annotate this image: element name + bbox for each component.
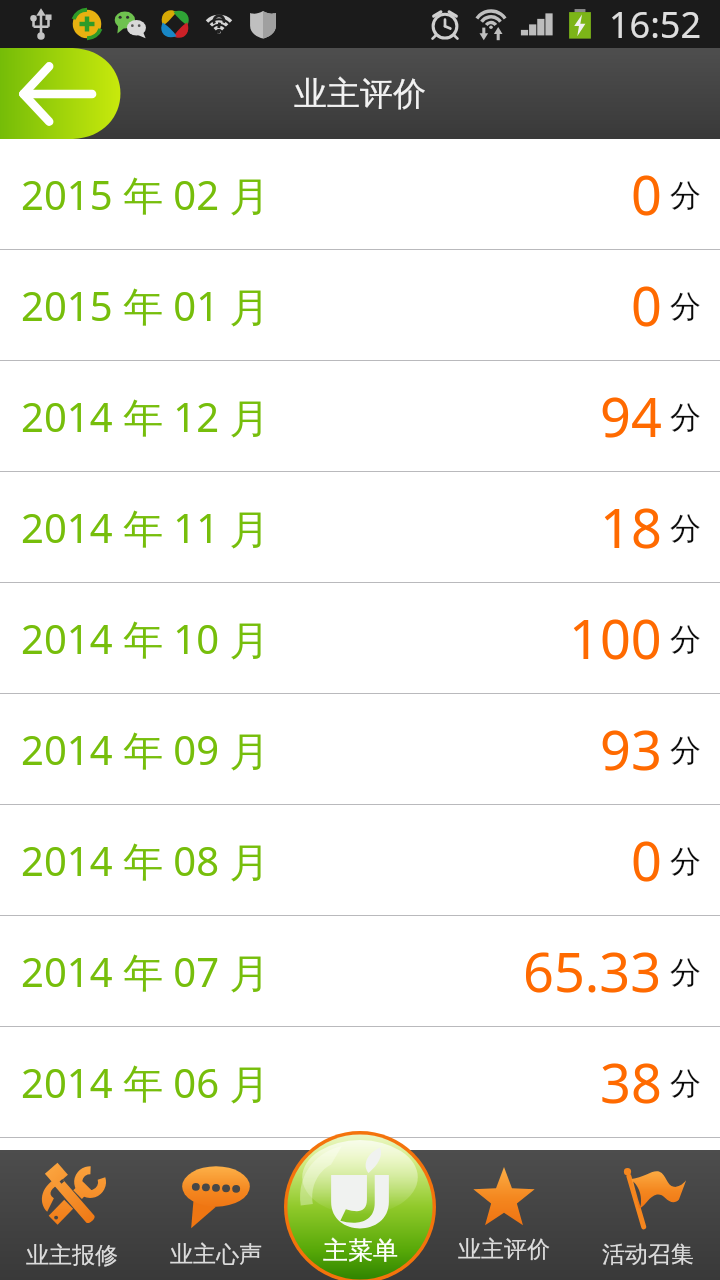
staticText: 65.33	[523, 934, 662, 1008]
staticText: 分	[670, 842, 701, 881]
staticText: 2014 年 12 月	[21, 389, 270, 444]
button[interactable]: 主菜单	[284, 1131, 436, 1280]
staticText: 2014 年 07 月	[21, 944, 270, 999]
button[interactable]: 2014 年 08 月	[0, 805, 720, 915]
button[interactable]: 2014 年 10 月	[0, 583, 720, 693]
button[interactable]: 2014 年 09 月	[0, 694, 720, 804]
staticText: 0	[631, 268, 662, 342]
staticText: 分	[670, 509, 701, 548]
staticText: 94	[600, 379, 662, 453]
staticText: 2014 年 08 月	[21, 833, 270, 888]
button[interactable]: 2014 年 06 月	[0, 1027, 720, 1137]
staticText: 0	[631, 157, 662, 231]
staticText: 93	[600, 712, 662, 786]
staticText: 业主评价	[294, 73, 426, 115]
staticText: 分	[670, 731, 701, 770]
staticText: 18	[600, 490, 662, 564]
staticText: 2014 年 11 月	[21, 500, 270, 555]
staticText: 0	[631, 823, 662, 897]
staticText: 活动召集	[602, 1240, 694, 1269]
staticText: 2014 年 10 月	[21, 611, 270, 666]
staticText: 分	[670, 953, 701, 992]
staticText: 2015 年 02 月	[21, 167, 270, 222]
staticText: 2015 年 01 月	[21, 278, 270, 333]
button[interactable]: 2014 年 07 月	[0, 916, 720, 1026]
staticText: 业主心声	[170, 1240, 262, 1269]
button[interactable]: 2014 年 11 月	[0, 472, 720, 582]
staticText: 分	[670, 176, 701, 215]
staticText: 2014 年 09 月	[21, 722, 270, 777]
button[interactable]: 活动召集	[576, 1150, 720, 1280]
button[interactable]: 业主心声	[144, 1150, 288, 1280]
staticText: 100	[569, 601, 662, 675]
staticText: 分	[670, 620, 701, 659]
staticText: 分	[670, 287, 701, 326]
button[interactable]: 2015 年 02 月	[0, 139, 720, 249]
staticText: 业主评价	[458, 1235, 550, 1264]
button[interactable]: 2014 年 12 月	[0, 361, 720, 471]
button[interactable]: Back	[0, 48, 120, 139]
staticText: 主菜单	[323, 1235, 398, 1266]
button[interactable]: 业主评价	[432, 1150, 576, 1280]
staticText: 业主报修	[26, 1241, 118, 1270]
staticText: 38	[600, 1045, 662, 1119]
staticText: 分	[670, 1064, 701, 1103]
button[interactable]: 业主报修	[0, 1150, 144, 1280]
staticText: 分	[670, 398, 701, 437]
staticText: 16:52	[609, 0, 702, 48]
button[interactable]: 2015 年 01 月	[0, 250, 720, 360]
staticText: 2014 年 06 月	[21, 1055, 270, 1110]
